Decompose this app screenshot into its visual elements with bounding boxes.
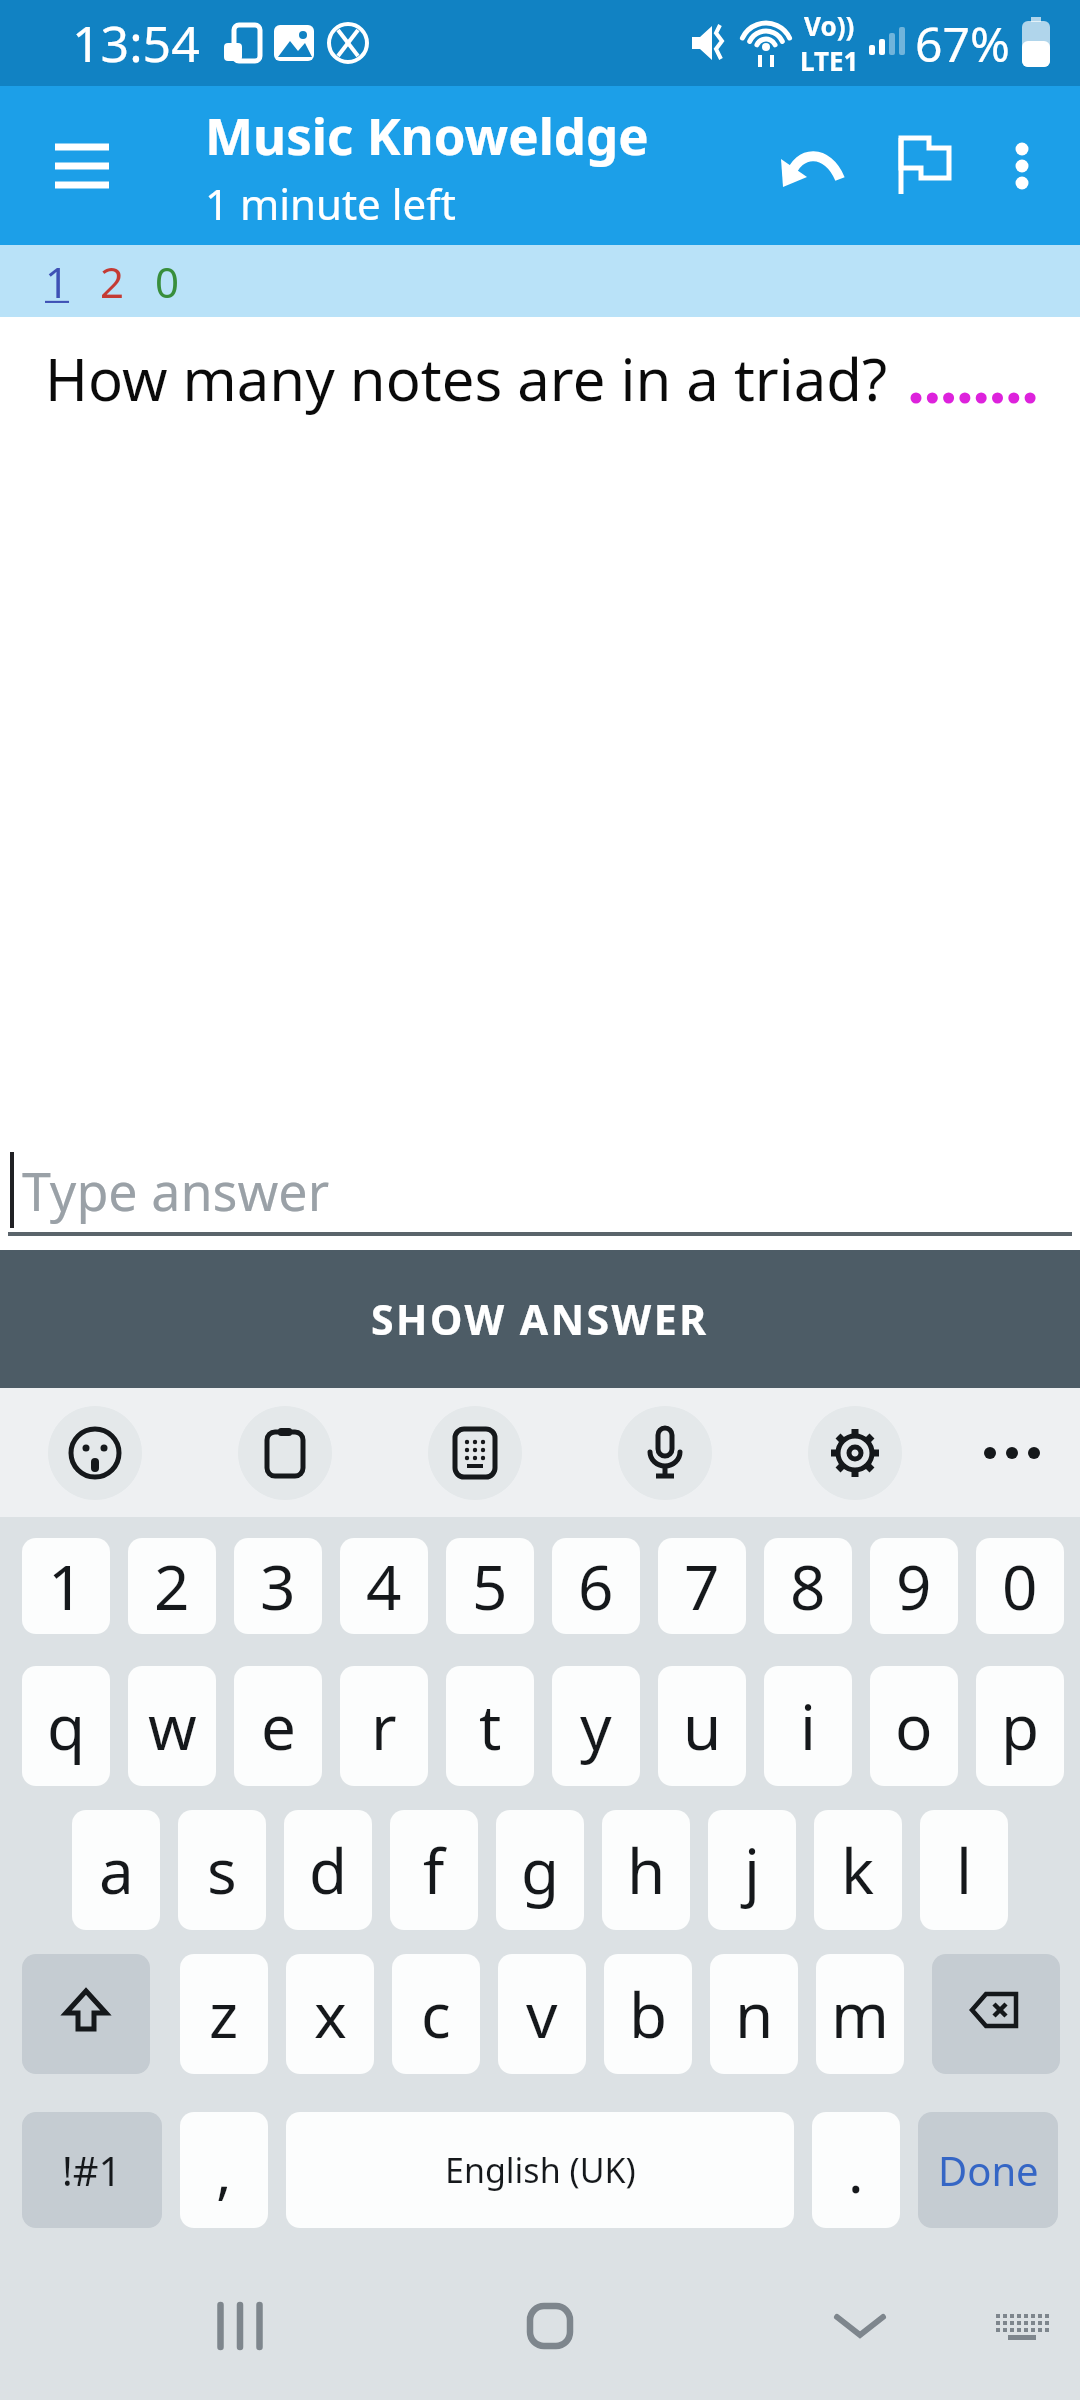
staticText: g bbox=[521, 1828, 560, 1912]
button[interactable]: x bbox=[286, 1954, 374, 2074]
button[interactable]: p bbox=[976, 1666, 1064, 1786]
button[interactable]: a bbox=[72, 1810, 160, 1930]
staticText: p bbox=[1001, 1684, 1040, 1768]
button[interactable]: 6 bbox=[552, 1538, 640, 1634]
button[interactable]: b bbox=[604, 1954, 692, 2074]
staticText: 7 bbox=[684, 1544, 720, 1628]
button[interactable] bbox=[828, 2294, 892, 2358]
staticText: English (UK) bbox=[445, 2147, 636, 2193]
button[interactable] bbox=[22, 1954, 150, 2074]
button[interactable]: 3 bbox=[234, 1538, 322, 1634]
staticText: f bbox=[423, 1828, 445, 1912]
button[interactable]: 2 bbox=[128, 1538, 216, 1634]
staticText: j bbox=[744, 1828, 760, 1912]
button[interactable] bbox=[238, 1406, 332, 1500]
staticText: 3 bbox=[260, 1544, 296, 1628]
button[interactable]: m bbox=[816, 1954, 904, 2074]
button[interactable] bbox=[972, 1413, 1052, 1493]
button[interactable]: , bbox=[180, 2112, 268, 2228]
staticText: !#1 bbox=[62, 2143, 122, 2197]
staticText: t bbox=[479, 1684, 502, 1768]
button[interactable]: k bbox=[814, 1810, 902, 1930]
button[interactable]: 5 bbox=[446, 1538, 534, 1634]
staticText: . bbox=[848, 2131, 864, 2210]
button[interactable]: f bbox=[390, 1810, 478, 1930]
staticText: 67% bbox=[915, 11, 1010, 76]
staticText: Done bbox=[938, 2143, 1039, 2197]
staticText: d bbox=[309, 1828, 348, 1912]
button[interactable]: o bbox=[870, 1666, 958, 1786]
button[interactable] bbox=[990, 2294, 1054, 2358]
staticText: 13:54 bbox=[72, 9, 200, 77]
staticText: s bbox=[207, 1828, 237, 1912]
staticText: i bbox=[800, 1684, 816, 1768]
staticText: 1 minute left bbox=[205, 175, 456, 232]
button[interactable]: l bbox=[920, 1810, 1008, 1930]
button[interactable] bbox=[48, 1406, 142, 1500]
button[interactable]: SHOW ANSWER bbox=[0, 1250, 1080, 1388]
staticText: 2 bbox=[100, 253, 125, 310]
button[interactable] bbox=[932, 1954, 1060, 2074]
staticText: m bbox=[831, 1972, 889, 2056]
button[interactable]: t bbox=[446, 1666, 534, 1786]
button[interactable] bbox=[984, 128, 1060, 204]
button[interactable]: j bbox=[708, 1810, 796, 1930]
staticText: LTE1 bbox=[800, 43, 859, 78]
staticText: r bbox=[371, 1684, 397, 1768]
button[interactable]: Done bbox=[918, 2112, 1058, 2228]
staticText: k bbox=[841, 1828, 875, 1912]
staticText: 1 bbox=[48, 1544, 84, 1628]
button[interactable]: w bbox=[128, 1666, 216, 1786]
button[interactable]: 8 bbox=[764, 1538, 852, 1634]
button[interactable]: y bbox=[552, 1666, 640, 1786]
button[interactable]: s bbox=[178, 1810, 266, 1930]
button[interactable]: English (UK) bbox=[286, 2112, 794, 2228]
button[interactable] bbox=[428, 1406, 522, 1500]
button[interactable]: Type answer bbox=[0, 1152, 1080, 1236]
button[interactable]: n bbox=[710, 1954, 798, 2074]
button[interactable]: q bbox=[22, 1666, 110, 1786]
staticText: c bbox=[421, 1972, 451, 2056]
button[interactable]: . bbox=[812, 2112, 900, 2228]
button[interactable] bbox=[808, 1406, 902, 1500]
button[interactable]: 0 bbox=[976, 1538, 1064, 1634]
button[interactable]: e bbox=[234, 1666, 322, 1786]
staticText: 0 bbox=[155, 253, 180, 310]
button[interactable]: 7 bbox=[658, 1538, 746, 1634]
button[interactable]: v bbox=[498, 1954, 586, 2074]
button[interactable]: 4 bbox=[340, 1538, 428, 1634]
staticText: n bbox=[735, 1972, 774, 2056]
button[interactable]: z bbox=[180, 1954, 268, 2074]
staticText: SHOW ANSWER bbox=[371, 1291, 709, 1347]
staticText: v bbox=[526, 1972, 558, 2056]
staticText: 8 bbox=[790, 1544, 826, 1628]
button[interactable] bbox=[768, 121, 858, 211]
button[interactable]: 9 bbox=[870, 1538, 958, 1634]
button[interactable]: h bbox=[602, 1810, 690, 1930]
staticText: y bbox=[580, 1684, 612, 1768]
button[interactable]: r bbox=[340, 1666, 428, 1786]
button[interactable]: 1 bbox=[22, 1538, 110, 1634]
button[interactable] bbox=[518, 2294, 582, 2358]
button[interactable]: i bbox=[764, 1666, 852, 1786]
staticText: b bbox=[629, 1972, 668, 2056]
staticText: 0 bbox=[1002, 1544, 1038, 1628]
button[interactable]: c bbox=[392, 1954, 480, 2074]
staticText: Type answer bbox=[22, 1155, 330, 1226]
staticText: u bbox=[683, 1684, 722, 1768]
button[interactable]: !#1 bbox=[22, 2112, 162, 2228]
button[interactable] bbox=[880, 121, 970, 211]
staticText: 9 bbox=[896, 1544, 932, 1628]
staticText: h bbox=[627, 1828, 666, 1912]
button[interactable]: d bbox=[284, 1810, 372, 1930]
staticText: 1 bbox=[45, 253, 70, 310]
button[interactable] bbox=[38, 122, 126, 210]
staticText: 5 bbox=[472, 1544, 508, 1628]
button[interactable] bbox=[618, 1406, 712, 1500]
button[interactable] bbox=[208, 2294, 272, 2358]
button[interactable]: u bbox=[658, 1666, 746, 1786]
button[interactable]: g bbox=[496, 1810, 584, 1930]
staticText: Music Knoweldge bbox=[205, 100, 649, 169]
staticText: Vo)) bbox=[804, 8, 855, 43]
staticText: w bbox=[148, 1684, 197, 1768]
